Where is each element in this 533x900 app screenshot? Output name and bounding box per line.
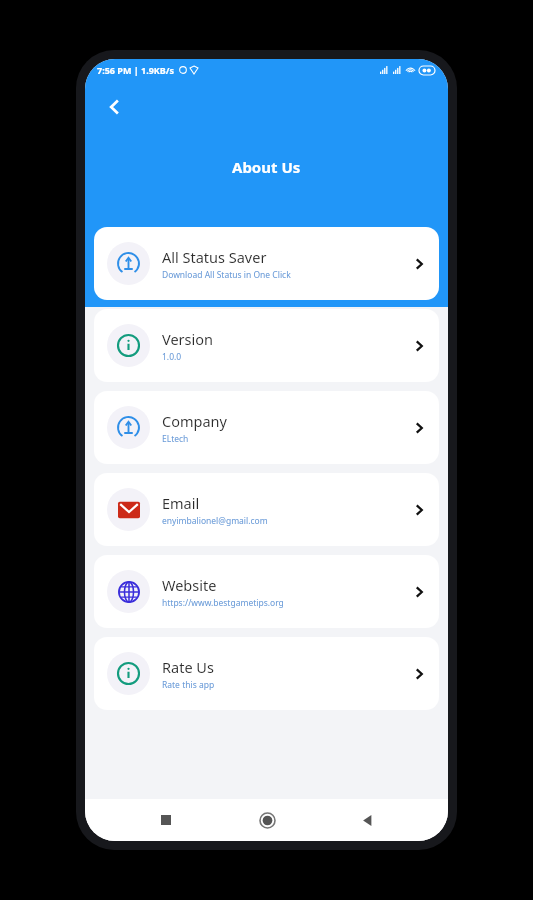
staticText: All Status Saver — [162, 247, 267, 267]
button[interactable]: Rate Us — [94, 637, 439, 710]
staticText: https://www.bestgametips.org — [162, 597, 284, 609]
staticText: Website — [162, 575, 217, 595]
staticText: 7:56 PM | 1.9KB/s — [97, 64, 175, 76]
staticText: enyimbalionel@gmail.com — [162, 515, 268, 527]
button[interactable]: Email — [94, 473, 439, 546]
staticText: Version — [162, 329, 213, 349]
button[interactable]: Recent apps — [146, 800, 186, 840]
staticText: ELtech — [162, 433, 189, 445]
button[interactable]: Back — [347, 800, 387, 840]
staticText: Email — [162, 493, 200, 513]
button[interactable]: Back — [95, 87, 135, 127]
staticText: Rate Us — [162, 657, 214, 677]
staticText: Rate this app — [162, 679, 215, 691]
staticText: Download All Status in One Click — [162, 269, 291, 281]
button[interactable]: Company — [94, 391, 439, 464]
button[interactable]: Version — [94, 309, 439, 382]
button[interactable]: Website — [94, 555, 439, 628]
staticText: About Us — [232, 157, 301, 177]
staticText: 1.0.0 — [162, 351, 182, 363]
button[interactable]: Home — [247, 800, 287, 840]
staticText: Company — [162, 411, 227, 431]
button[interactable]: All Status Saver — [94, 227, 439, 300]
